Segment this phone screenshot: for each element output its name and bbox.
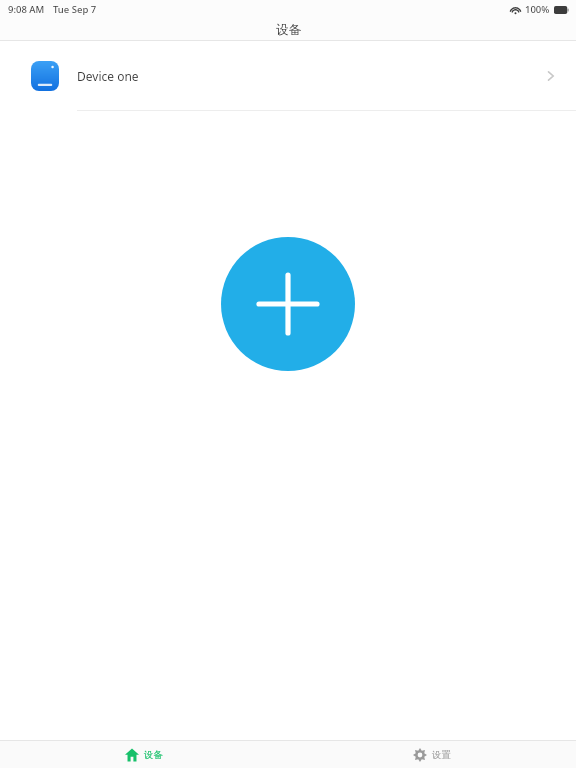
staticText: 设备 bbox=[144, 749, 163, 761]
staticText: 100% bbox=[525, 3, 550, 16]
button[interactable]: 设置 bbox=[288, 741, 576, 768]
staticText: 9:08 AM bbox=[8, 3, 45, 16]
button[interactable]: 设备 bbox=[0, 741, 288, 768]
button[interactable]: Add device bbox=[221, 237, 355, 371]
staticText: 设置 bbox=[432, 749, 451, 761]
button[interactable]: Device one bbox=[0, 41, 576, 110]
staticText: 设备 bbox=[276, 22, 301, 38]
staticText: Tue Sep 7 bbox=[53, 3, 97, 16]
staticText: Device one bbox=[77, 68, 139, 84]
